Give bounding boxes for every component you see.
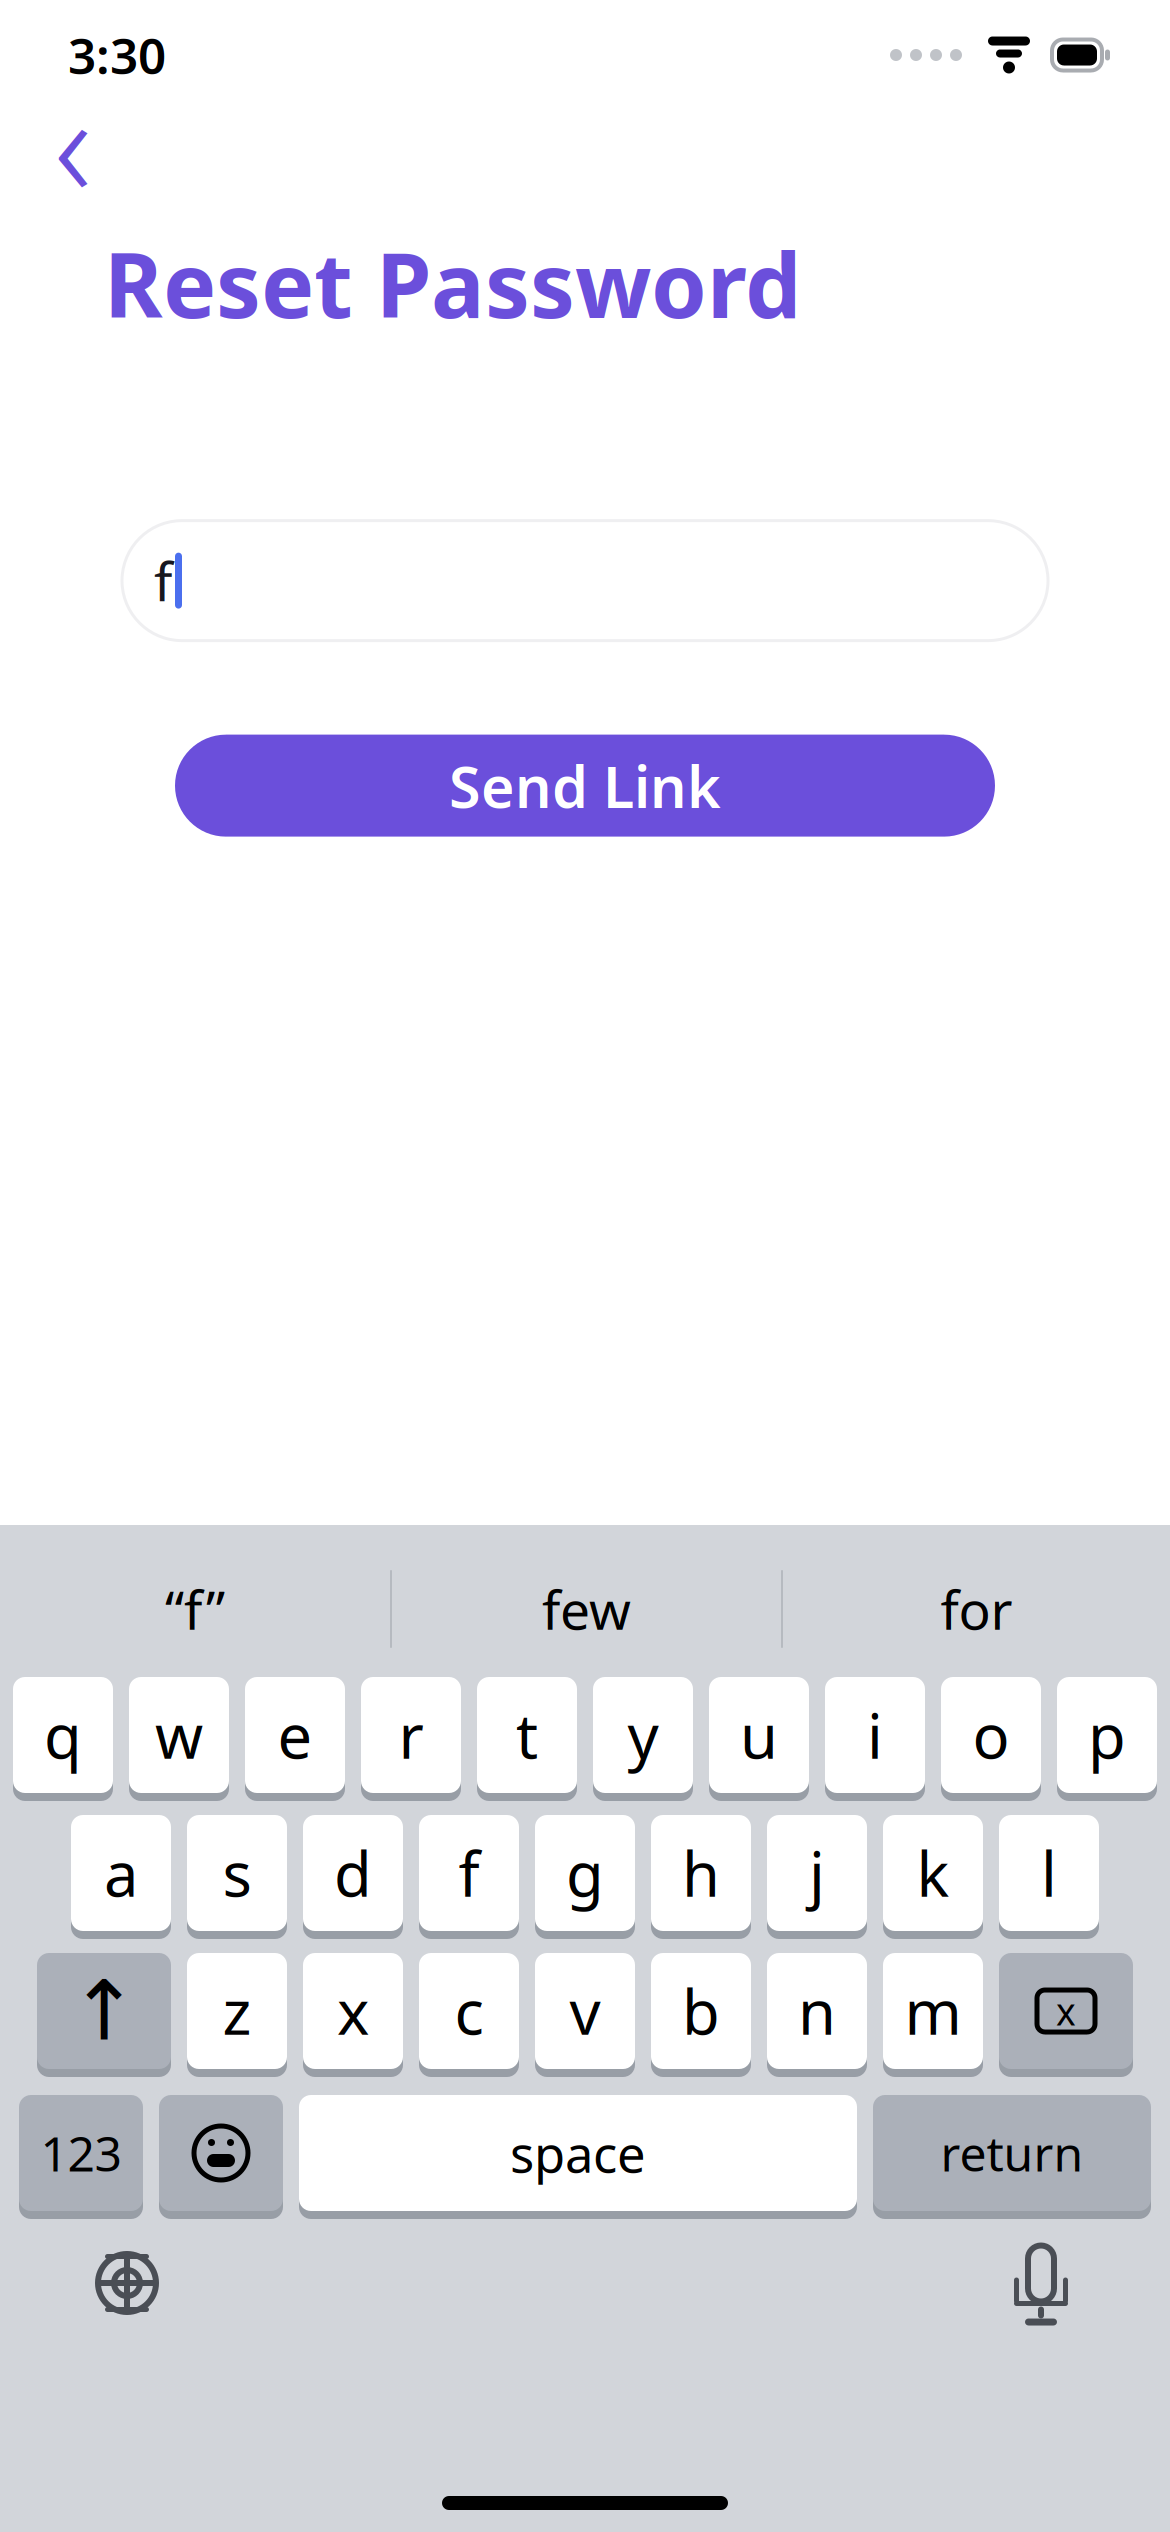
button[interactable]: z — [187, 1953, 287, 2077]
button[interactable]: j — [767, 1815, 867, 1939]
staticText: v — [569, 1970, 600, 2052]
staticText: t — [516, 1694, 538, 1776]
staticText: for — [940, 1574, 1012, 1644]
button[interactable]: Back — [38, 94, 108, 190]
staticText: c — [454, 1970, 483, 2052]
button[interactable]: Send Link — [175, 735, 995, 837]
button[interactable]: l — [999, 1815, 1099, 1939]
staticText: z — [222, 1970, 251, 2052]
staticText: ‹ — [54, 46, 92, 238]
staticText: 123 — [40, 2121, 121, 2185]
button[interactable]: b — [651, 1953, 751, 2077]
staticText: e — [277, 1694, 312, 1776]
staticText: Reset Password — [104, 224, 801, 343]
staticText: “f” — [165, 1574, 225, 1644]
staticText: m — [904, 1970, 961, 2052]
button[interactable]: d — [303, 1815, 403, 1939]
button[interactable]: s — [187, 1815, 287, 1939]
staticText: f — [458, 1832, 479, 1914]
staticText: b — [682, 1970, 720, 2052]
staticText: i — [867, 1694, 883, 1776]
button[interactable]: q — [13, 1677, 113, 1801]
staticText: u — [740, 1694, 778, 1776]
staticText: d — [334, 1832, 372, 1914]
staticText: return — [940, 2121, 1083, 2185]
staticText: w — [155, 1694, 203, 1776]
button[interactable]: w — [129, 1677, 229, 1801]
button[interactable]: n — [767, 1953, 867, 2077]
button[interactable]: u — [709, 1677, 809, 1801]
button[interactable]: g — [535, 1815, 635, 1939]
button[interactable]: few — [392, 1561, 781, 1657]
button[interactable]: e — [245, 1677, 345, 1801]
staticText: space — [510, 2119, 646, 2187]
button[interactable]: k — [883, 1815, 983, 1939]
staticText: h — [682, 1832, 720, 1914]
button[interactable]: f — [419, 1815, 519, 1939]
button[interactable]: Shift — [37, 1953, 171, 2077]
button[interactable]: c — [419, 1953, 519, 2077]
staticText: g — [566, 1832, 604, 1914]
button[interactable]: space — [299, 2095, 857, 2219]
staticText: x — [1056, 1986, 1076, 2036]
button[interactable]: o — [941, 1677, 1041, 1801]
button[interactable]: 123 — [19, 2095, 143, 2219]
button[interactable]: return — [873, 2095, 1151, 2219]
staticText: Send Link — [449, 748, 721, 824]
button[interactable]: v — [535, 1953, 635, 2077]
staticText: k — [916, 1832, 949, 1914]
staticText: r — [398, 1694, 423, 1776]
staticText: n — [798, 1970, 836, 2052]
button[interactable]: p — [1057, 1677, 1157, 1801]
button[interactable]: x — [303, 1953, 403, 2077]
staticText: p — [1088, 1694, 1126, 1776]
button[interactable]: for — [783, 1561, 1170, 1657]
button[interactable]: r — [361, 1677, 461, 1801]
button[interactable]: y — [593, 1677, 693, 1801]
staticText: y — [627, 1694, 658, 1776]
staticText: few — [542, 1574, 631, 1644]
staticText: l — [1041, 1832, 1057, 1914]
button[interactable]: m — [883, 1953, 983, 2077]
staticText: 3:30 — [68, 22, 166, 88]
button[interactable]: Emoji — [159, 2095, 283, 2219]
button[interactable]: Dictate — [986, 2233, 1096, 2333]
staticText: s — [222, 1832, 251, 1914]
button[interactable]: a — [71, 1815, 171, 1939]
staticText: ↑ — [69, 1964, 138, 2058]
button[interactable]: i — [825, 1677, 925, 1801]
staticText: a — [104, 1832, 138, 1914]
staticText: j — [809, 1832, 825, 1914]
staticText: f — [154, 545, 172, 616]
staticText: o — [972, 1694, 1009, 1776]
button[interactable]: Delete — [999, 1953, 1133, 2077]
button[interactable]: “f” — [0, 1561, 390, 1657]
button[interactable]: t — [477, 1677, 577, 1801]
staticText: x — [337, 1970, 369, 2052]
button[interactable]: h — [651, 1815, 751, 1939]
button[interactable]: Next keyboard — [72, 2233, 182, 2333]
staticText: q — [44, 1694, 82, 1776]
